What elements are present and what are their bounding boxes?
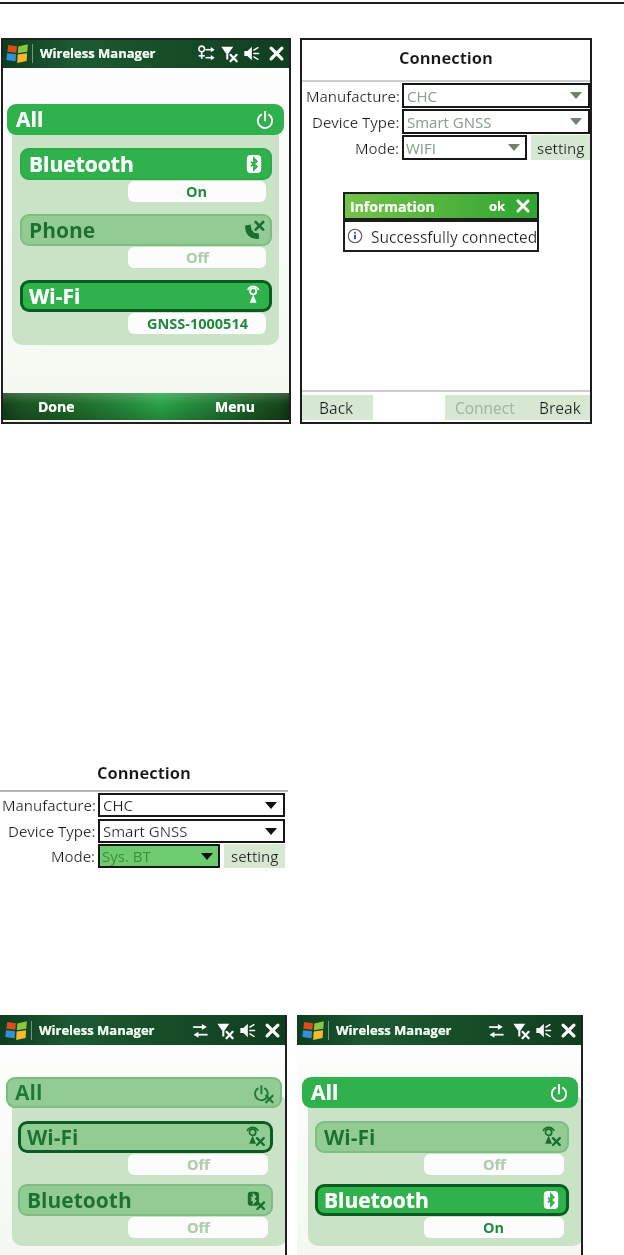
staticText: ok [489,197,506,215]
staticText: Done [38,397,75,416]
button[interactable]: Connect [445,395,525,420]
button[interactable]: Menu [205,393,265,420]
staticText: Break [539,397,581,418]
staticText: Wireless Manager [336,1021,452,1039]
button[interactable]: All [7,104,284,135]
staticText: Connect [455,397,515,418]
button[interactable]: Bluetooth [20,148,272,180]
staticText: Phone [29,216,96,245]
staticText: Sys. BT [102,846,151,866]
button[interactable]: Smart GNSS [402,109,590,134]
staticText: Smart GNSS [407,112,492,132]
button[interactable]: Phone [20,214,272,246]
button[interactable]: Close [561,1023,576,1038]
button[interactable]: Connection status [488,1021,507,1040]
staticText: Mode: [355,138,400,158]
staticText: On [483,1218,505,1238]
staticText: Back [319,397,354,418]
button[interactable]: setting [224,844,285,868]
button[interactable]: Volume [536,1022,553,1039]
staticText: GNSS-1000514 [147,314,248,334]
staticText: Device Type: [312,112,400,132]
button[interactable]: No signal [217,1022,234,1039]
staticText: Mode: [51,846,96,866]
staticText: Bluetooth [27,1186,132,1215]
button[interactable]: Smart GNSS [98,819,285,843]
button[interactable]: CHC [402,83,590,108]
staticText: Wi-Fi [27,1123,79,1152]
staticText: Successfully connected [371,226,538,247]
button[interactable]: Wi-Fi [18,1121,273,1153]
staticText: Smart GNSS [103,821,188,841]
staticText: CHC [103,795,133,815]
button[interactable]: Close [265,1023,280,1038]
staticText: Bluetooth [324,1186,429,1215]
staticText: CHC [407,86,437,106]
staticText: Off [187,1218,210,1238]
other: Turn all on [253,1083,273,1103]
staticText: Bluetooth [29,150,134,179]
button[interactable]: Close [516,199,530,213]
staticText: Off [483,1155,506,1175]
button[interactable]: Wireless Manager [297,1015,583,1045]
button[interactable]: Done [26,393,86,420]
staticText: Wi-Fi [324,1123,376,1152]
button[interactable]: Wireless Manager [1,38,291,68]
staticText: All [16,105,44,134]
button[interactable]: Wi-Fi [20,280,272,312]
staticText: Information [350,197,435,216]
other: Turn all off [255,110,275,130]
staticText: On [186,182,208,202]
staticText: Device Type: [8,821,96,841]
button[interactable]: All [6,1077,282,1108]
staticText: Manufacture: [306,86,400,106]
staticText: WIFI [406,138,436,158]
button[interactable]: No signal [513,1022,530,1039]
staticText: Wireless Manager [40,44,156,62]
button[interactable]: Bluetooth [315,1184,569,1216]
staticText: Off [187,1155,210,1175]
button[interactable]: Sys. BT [98,844,220,868]
staticText: All [311,1078,339,1107]
button[interactable]: Bluetooth [18,1184,273,1216]
button[interactable]: Connection status [196,44,215,63]
staticText: Wireless Manager [39,1021,155,1039]
button[interactable]: CHC [98,793,285,817]
button[interactable]: Volume [244,45,261,62]
staticText: All [15,1078,43,1107]
other: Turn all off [549,1083,569,1103]
button[interactable]: Wireless Manager [0,1015,287,1045]
button[interactable]: Back [300,395,373,420]
button[interactable]: setting [531,135,590,160]
staticText: Connection [399,46,493,68]
button[interactable]: Wi-Fi [315,1121,569,1153]
button[interactable]: Close [269,46,284,61]
staticText: setting [537,138,585,158]
button[interactable]: WIFI [402,135,527,160]
staticText: Menu [215,397,255,416]
staticText: Wi-Fi [29,282,81,311]
button[interactable]: All [302,1077,578,1108]
staticText: Off [186,248,209,268]
staticText: Connection [97,761,191,783]
button[interactable]: Connection status [192,1021,211,1040]
staticText: Manufacture: [2,795,96,815]
button[interactable]: Volume [240,1022,257,1039]
button[interactable]: No signal [221,45,238,62]
staticText: setting [231,846,279,866]
button[interactable]: Break [527,395,592,420]
